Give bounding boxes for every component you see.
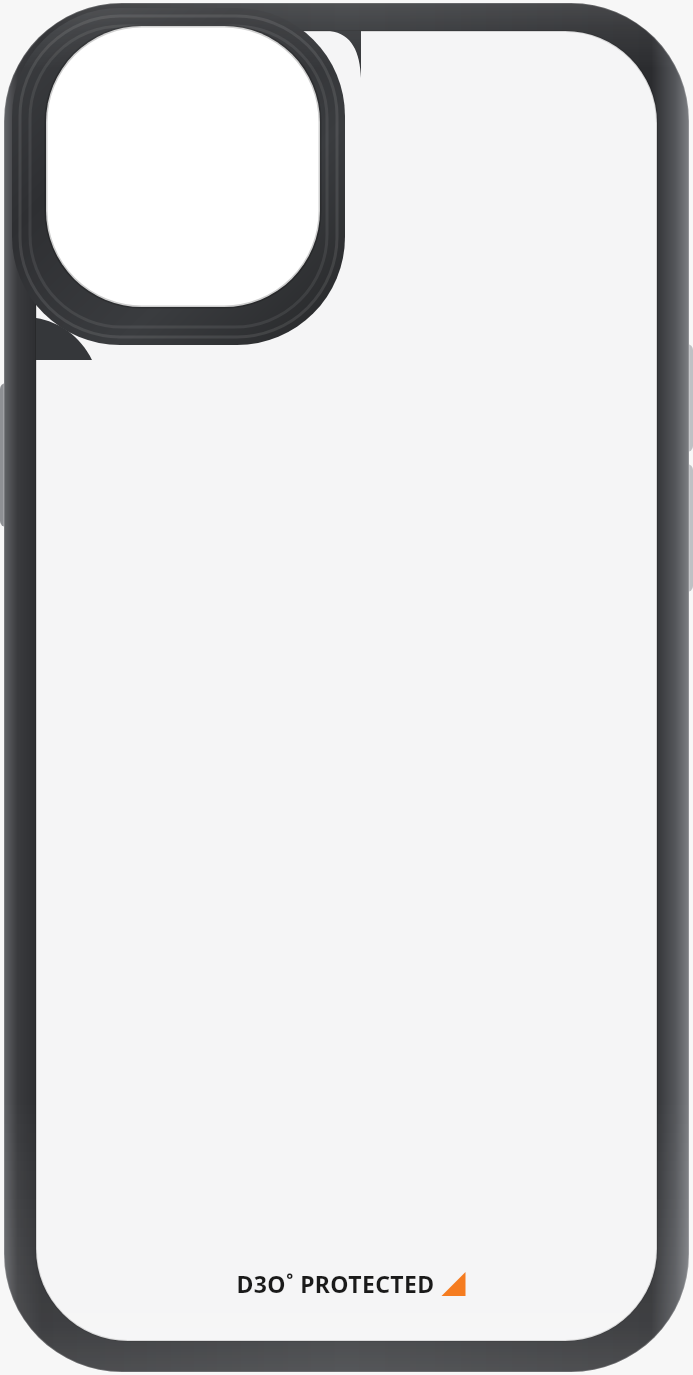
button[interactable]: Phone case product image, D3O protected … [0, 0, 693, 1375]
